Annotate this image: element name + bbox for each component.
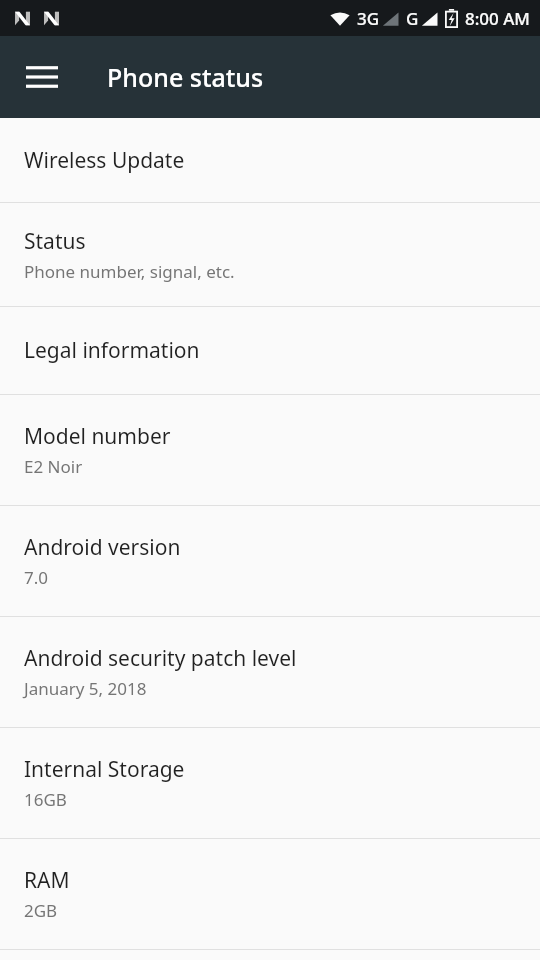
staticText: January 5, 2018 xyxy=(24,677,147,700)
staticText: Android security patch level xyxy=(24,644,297,673)
staticText: RAM xyxy=(24,866,70,895)
staticText: G xyxy=(406,7,419,30)
staticText: Internal Storage xyxy=(24,755,185,784)
staticText: 16GB xyxy=(24,788,67,811)
button[interactable]: Model number xyxy=(0,395,540,505)
staticText: 7.0 xyxy=(24,566,49,589)
button[interactable]: RAM xyxy=(0,839,540,949)
button[interactable]: Android version xyxy=(0,506,540,616)
staticText: Android version xyxy=(24,533,181,562)
staticText: Wireless Update xyxy=(24,146,185,175)
button[interactable]: Internal Storage xyxy=(0,728,540,838)
staticText: Phone number, signal, etc. xyxy=(24,260,235,283)
staticText: E2 Noir xyxy=(24,455,83,478)
staticText: Model number xyxy=(24,422,171,451)
button[interactable]: Android security patch level xyxy=(0,617,540,727)
staticText: Legal information xyxy=(24,336,200,365)
button[interactable]: Status xyxy=(0,203,540,306)
staticText: Status xyxy=(24,227,86,256)
button[interactable]: Open navigation menu xyxy=(14,49,70,105)
staticText: Phone status xyxy=(107,60,264,94)
staticText: 8:00 AM xyxy=(465,7,530,30)
button[interactable]: Wireless Update xyxy=(0,118,540,202)
staticText: 3G xyxy=(357,7,380,30)
button[interactable]: Legal information xyxy=(0,307,540,394)
staticText: 2GB xyxy=(24,899,58,922)
